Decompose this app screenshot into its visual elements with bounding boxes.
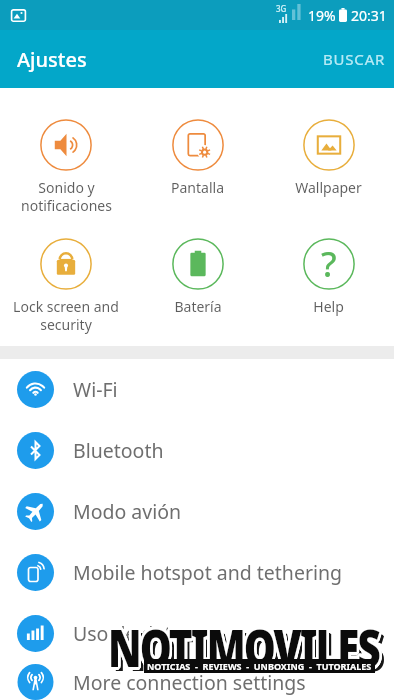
button[interactable]: Mobile hotspot and tethering	[0, 542, 394, 603]
staticText: NOTIMOVILES	[108, 610, 379, 681]
staticText: Uso de datos	[73, 620, 193, 647]
button[interactable]: Batería	[132, 238, 263, 316]
button[interactable]: ?	[263, 238, 394, 316]
staticText: NOTIMOVILES	[107, 610, 378, 681]
button[interactable]: Bluetooth	[0, 420, 394, 481]
staticText: Mobile hotspot and tethering	[73, 559, 343, 586]
staticText: NOTIMOVILES	[110, 609, 381, 680]
staticText: NOTIMOVILES	[106, 612, 378, 683]
staticText: 19%	[308, 6, 336, 25]
button[interactable]: Uso de datos	[0, 603, 394, 664]
staticText: NOTIMOVILES	[109, 612, 380, 683]
staticText: Bluetooth	[73, 437, 164, 464]
staticText: NOTIMOVILES	[107, 611, 378, 682]
staticText: NOTIMOVILES	[107, 608, 378, 679]
staticText: NOTIMOVILES	[110, 611, 382, 682]
staticText: NOTIMOVILES	[106, 612, 377, 683]
staticText: Modo avión	[73, 498, 182, 525]
staticText: NOTIMOVILES	[107, 612, 378, 683]
button[interactable]: More connection settings	[0, 664, 394, 700]
staticText: NOTIMOVILES	[110, 613, 381, 684]
staticText: NOTIMOVILES	[110, 611, 381, 682]
button[interactable]: BUSCAR	[306, 37, 394, 81]
staticText: NOTIMOVILES	[107, 614, 378, 685]
staticText: NOTIMOVILES	[109, 609, 380, 680]
staticText: Batería	[174, 297, 222, 316]
staticText: BUSCAR	[323, 49, 386, 69]
staticText: Lock screen and security	[13, 297, 119, 334]
staticText: NOTIMOVILES	[109, 613, 380, 684]
staticText: NOTIMOVILES	[111, 614, 382, 685]
staticText: NOTIMOVILES	[110, 610, 382, 681]
staticText: Pantalla	[171, 178, 224, 197]
button[interactable]: Wi-Fi	[0, 359, 394, 420]
button[interactable]: Pantalla	[132, 119, 263, 197]
button[interactable]: Lock screen and security	[0, 238, 132, 334]
staticText: NOTIMOVILES	[106, 610, 377, 681]
staticText: Sonido y notificaciones	[21, 178, 112, 215]
staticText: NOTIMOVILES	[113, 615, 384, 686]
staticText: NOTIMOVILES	[110, 610, 381, 681]
staticText: 20:31	[351, 6, 387, 25]
staticText: Help	[313, 297, 344, 316]
staticText: NOTIMOVILES	[113, 615, 384, 686]
staticText: NOTICIAS - REVIEWS - UNBOXING - TUTORIAL…	[147, 660, 372, 672]
staticText: Wi-Fi	[73, 376, 118, 403]
staticText: NOTIMOVILES	[110, 612, 381, 683]
staticText: NOTIMOVILES	[107, 613, 378, 684]
staticText: NOTIMOVILES	[109, 614, 380, 685]
staticText: NOTIMOVILES	[109, 611, 380, 682]
staticText: NOTIMOVILES	[106, 613, 378, 684]
staticText: Ajustes	[17, 46, 87, 73]
staticText: NOTIMOVILES	[106, 611, 377, 682]
button[interactable]: Sonido y notificaciones	[0, 119, 132, 215]
staticText: NOTIMOVILES	[110, 613, 381, 684]
staticText: NOTIMOVILES	[109, 610, 380, 681]
staticText: NOTIMOVILES	[106, 611, 378, 682]
staticText: NOTIMOVILES	[108, 609, 379, 680]
staticText: NOTIMOVILES	[108, 614, 379, 685]
staticText: NOTIMOVILES	[108, 612, 379, 683]
staticText: NOTIMOVILES	[110, 612, 382, 683]
staticText: NOTIMOVILES	[106, 610, 378, 681]
staticText: NOTIMOVILES	[112, 614, 383, 685]
staticText: ?	[321, 240, 337, 288]
staticText: NOTIMOVILES	[109, 608, 380, 679]
staticText: NOTIMOVILES	[107, 609, 378, 680]
staticText: NOTIMOVILES	[108, 608, 379, 679]
staticText: NOTIMOVILES	[110, 613, 382, 684]
staticText: NOTIMOVILES	[108, 611, 379, 682]
other: Gallery	[11, 8, 26, 23]
button[interactable]: Wallpaper	[263, 119, 394, 197]
staticText: Wallpaper	[295, 178, 362, 197]
staticText: 3G	[276, 3, 287, 14]
staticText: NOTIMOVILES	[106, 609, 378, 680]
staticText: NOTIMOVILES	[108, 613, 379, 684]
staticText: More connection settings	[73, 669, 306, 696]
button[interactable]: Modo avión	[0, 481, 394, 542]
